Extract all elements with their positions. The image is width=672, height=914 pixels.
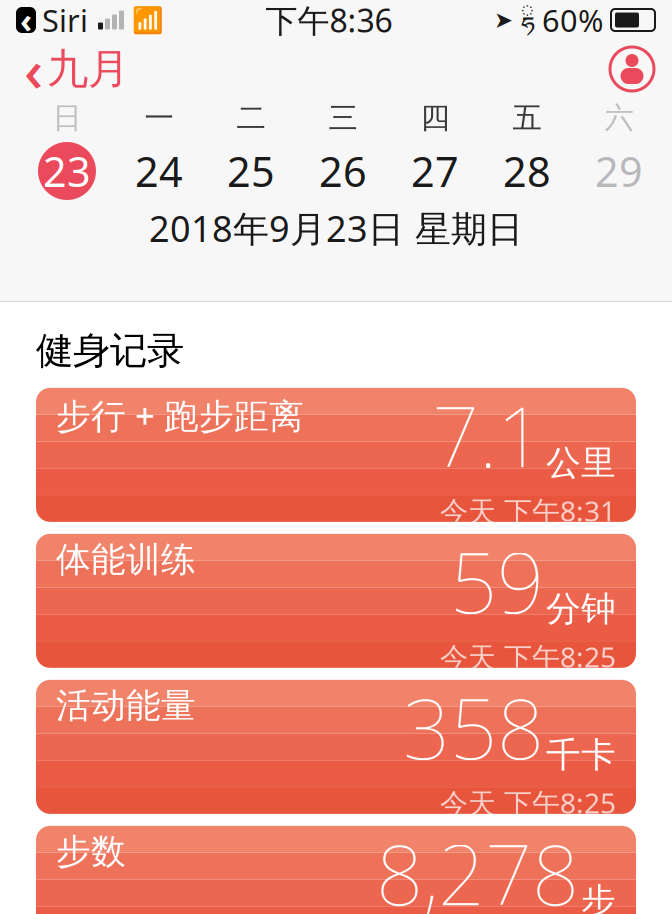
button[interactable]: 步行 + 跑步距离 bbox=[36, 388, 636, 522]
staticText: 分钟 bbox=[546, 588, 616, 630]
button[interactable]: 28 bbox=[481, 140, 573, 202]
button[interactable]: 23 bbox=[21, 140, 113, 202]
staticText: 健身记录 bbox=[36, 328, 184, 374]
staticText: 步行 + 跑步距离 bbox=[56, 392, 304, 438]
staticText: 358 bbox=[403, 672, 544, 782]
staticText: 五 bbox=[512, 100, 541, 136]
staticText: 59 bbox=[450, 526, 544, 636]
staticText: 2018年9月23日 星期日 bbox=[149, 204, 523, 252]
staticText: 24 bbox=[135, 144, 183, 198]
button[interactable]: 活动能量 bbox=[36, 680, 636, 814]
staticText: 步数 bbox=[56, 830, 126, 873]
staticText: 60% bbox=[542, 0, 603, 40]
staticText: 25 bbox=[227, 144, 275, 198]
staticText: 九月 bbox=[47, 44, 129, 94]
button[interactable]: 24 bbox=[113, 140, 205, 202]
staticText: 📶 bbox=[132, 5, 164, 34]
staticText: 一 bbox=[144, 100, 173, 136]
button[interactable]: 27 bbox=[389, 140, 481, 202]
staticText: 28 bbox=[503, 144, 551, 198]
staticText: 二 bbox=[236, 100, 265, 136]
staticText: 公里 bbox=[546, 442, 616, 484]
staticText: 今天 下午8:31 bbox=[440, 492, 616, 529]
staticText: ‹ bbox=[20, 0, 32, 42]
staticText: 26 bbox=[319, 144, 367, 198]
button[interactable]: 步数 bbox=[36, 826, 636, 914]
staticText: 23 bbox=[43, 144, 91, 198]
staticText: ‹ bbox=[24, 30, 43, 108]
staticText: ྷ bbox=[520, 0, 535, 57]
staticText: 8,278 bbox=[376, 818, 579, 914]
staticText: 活动能量 bbox=[56, 684, 196, 727]
staticText: 29 bbox=[595, 144, 643, 198]
staticText: 下午8:36 bbox=[265, 0, 392, 41]
staticText: 今天 下午8:25 bbox=[440, 784, 616, 821]
staticText: 7.1 bbox=[432, 380, 544, 490]
button[interactable]: 29 bbox=[573, 140, 665, 202]
button[interactable]: ‹ bbox=[16, 45, 137, 93]
staticText: Siri bbox=[42, 0, 88, 40]
staticText: 体能训练 bbox=[56, 538, 196, 581]
staticText: 步 bbox=[581, 880, 616, 914]
button[interactable]: 体能训练 bbox=[36, 534, 636, 668]
button[interactable]: 个人资料 bbox=[608, 45, 656, 93]
button[interactable]: 26 bbox=[297, 140, 389, 202]
staticText: 日 bbox=[52, 100, 81, 136]
staticText: 今天 下午8:25 bbox=[440, 638, 616, 675]
staticText: 六 bbox=[604, 100, 633, 136]
staticText: 千卡 bbox=[546, 734, 616, 776]
button[interactable]: 25 bbox=[205, 140, 297, 202]
staticText: 27 bbox=[411, 144, 459, 198]
staticText: ➤ bbox=[494, 7, 513, 33]
staticText: 三 bbox=[328, 100, 357, 136]
staticText: 四 bbox=[420, 100, 449, 136]
